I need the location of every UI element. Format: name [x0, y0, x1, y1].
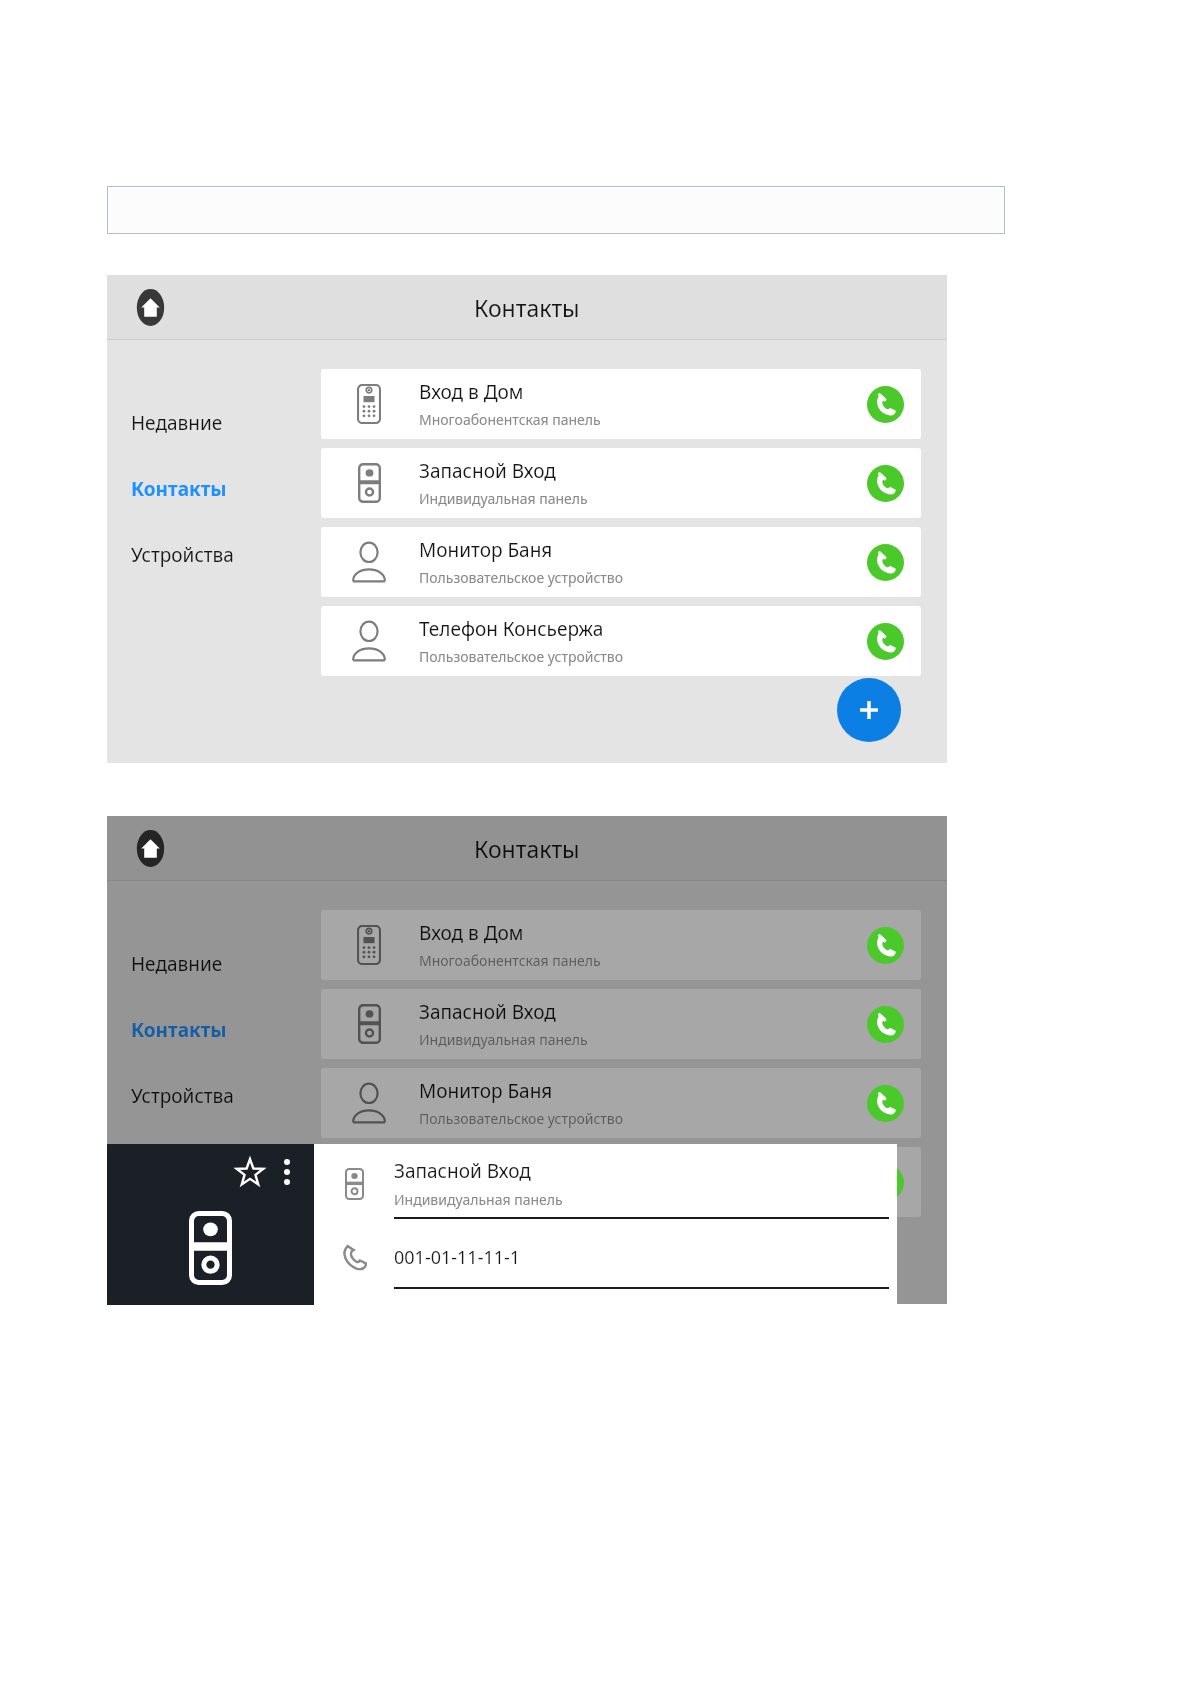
staticText: Телефон Консьержа	[419, 616, 604, 642]
button[interactable]: Телефон Консьержа	[321, 606, 921, 676]
button[interactable]: Favorite	[232, 1154, 268, 1190]
staticText: Монитор Баня	[419, 1078, 553, 1104]
staticText: Устройства	[131, 1083, 234, 1109]
button[interactable]: Add contact	[837, 678, 901, 742]
staticText: Индивидуальная панель	[394, 1190, 563, 1209]
button[interactable]: Call Телефон Консьержа	[861, 617, 909, 665]
staticText: Индивидуальная панель	[419, 489, 588, 508]
staticText: Многоабонентская панель	[419, 951, 601, 970]
button[interactable]: Call Монитор Баня	[861, 1079, 909, 1127]
staticText: Запасной Вход	[419, 999, 556, 1025]
staticText: Пользовательское устройство	[419, 1109, 624, 1128]
staticText: Запасной Вход	[419, 458, 556, 484]
button[interactable]: More options	[272, 1157, 302, 1187]
button[interactable]: Call Монитор Баня	[861, 538, 909, 586]
button[interactable]: Недавние	[107, 408, 321, 438]
staticText: Пользовательское устройство	[419, 1188, 624, 1207]
button[interactable]: Call Запасной Вход	[861, 1000, 909, 1048]
staticText: Устройства	[131, 542, 234, 568]
staticText: Контакты	[474, 833, 580, 864]
staticText: Контакты	[131, 1017, 227, 1043]
button[interactable]: Call Вход в Дом	[861, 380, 909, 428]
staticText: Телефон Консьержа	[419, 1157, 604, 1183]
button[interactable]: Монитор Баня	[321, 1068, 921, 1138]
button[interactable]: Запасной Вход	[321, 989, 921, 1059]
button[interactable]: Home	[128, 285, 172, 329]
button[interactable]: Устройства	[107, 1081, 321, 1111]
button[interactable]: Call Запасной Вход	[861, 459, 909, 507]
staticText: 001-01-11-11-1	[394, 1245, 521, 1270]
staticText: Контакты	[474, 292, 580, 323]
staticText: Пользовательское устройство	[419, 568, 624, 587]
button[interactable]: Запасной Вход	[321, 448, 921, 518]
button[interactable]: Вход в Дом	[321, 910, 921, 980]
button[interactable]: Call Телефон Консьержа	[861, 1158, 909, 1206]
button[interactable]: Контакты	[107, 474, 321, 504]
staticText: Недавние	[131, 410, 223, 436]
staticText: Недавние	[131, 951, 223, 977]
button[interactable]: Вход в Дом	[321, 369, 921, 439]
button[interactable]: Недавние	[107, 949, 321, 979]
staticText: Контакты	[131, 476, 227, 502]
staticText: Вход в Дом	[419, 920, 524, 946]
staticText: Запасной Вход	[394, 1158, 531, 1184]
button[interactable]: Устройства	[107, 540, 321, 570]
staticText: Пользовательское устройство	[419, 647, 624, 666]
button[interactable]: Телефон Консьержа	[321, 1147, 921, 1217]
button[interactable]: Home	[128, 826, 172, 870]
staticText: Монитор Баня	[419, 537, 553, 563]
button[interactable]: Контакты	[107, 1015, 321, 1045]
staticText: Индивидуальная панель	[419, 1030, 588, 1049]
button[interactable]: Монитор Баня	[321, 527, 921, 597]
staticText: Вход в Дом	[419, 379, 524, 405]
staticText: Многоабонентская панель	[419, 410, 601, 429]
button[interactable]: Call Вход в Дом	[861, 921, 909, 969]
